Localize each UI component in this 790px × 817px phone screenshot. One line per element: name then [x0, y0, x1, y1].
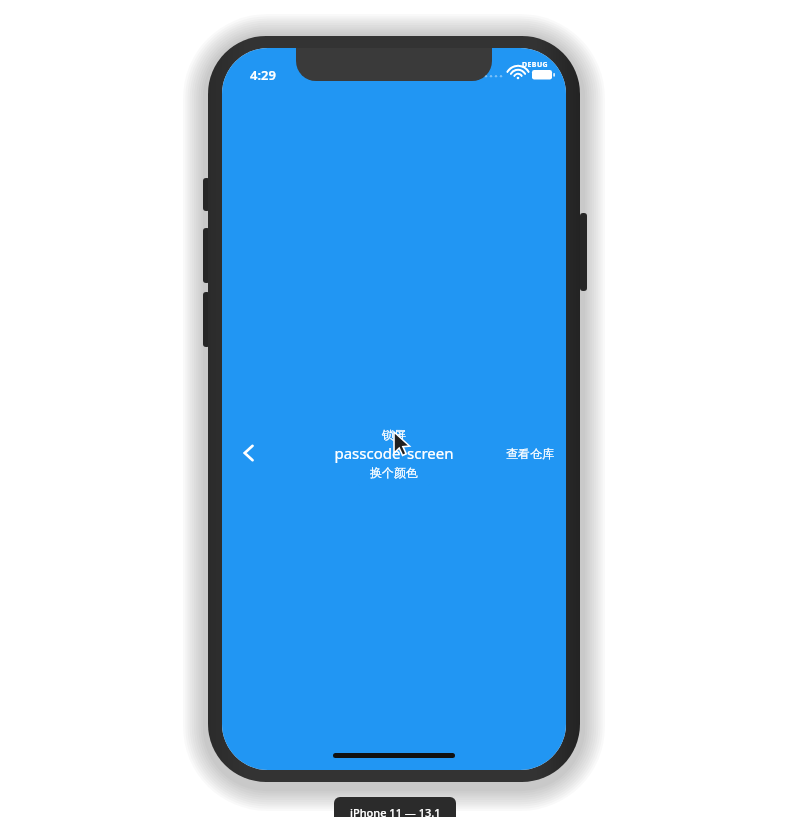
- button[interactable]: Back: [228, 432, 270, 474]
- button[interactable]: 换个颜色: [358, 459, 430, 486]
- staticText: 查看仓库: [506, 446, 554, 461]
- staticText: iPhone 11 — 13.1: [350, 805, 441, 817]
- staticText: passcode_screen: [334, 443, 454, 463]
- staticText: 4:29: [250, 66, 276, 84]
- button[interactable]: 锁屏: [358, 421, 430, 448]
- button[interactable]: 查看仓库: [498, 438, 562, 469]
- staticText: 换个颜色: [370, 465, 418, 480]
- staticText: 锁屏: [382, 427, 406, 442]
- staticText: DEBUG: [522, 60, 549, 70]
